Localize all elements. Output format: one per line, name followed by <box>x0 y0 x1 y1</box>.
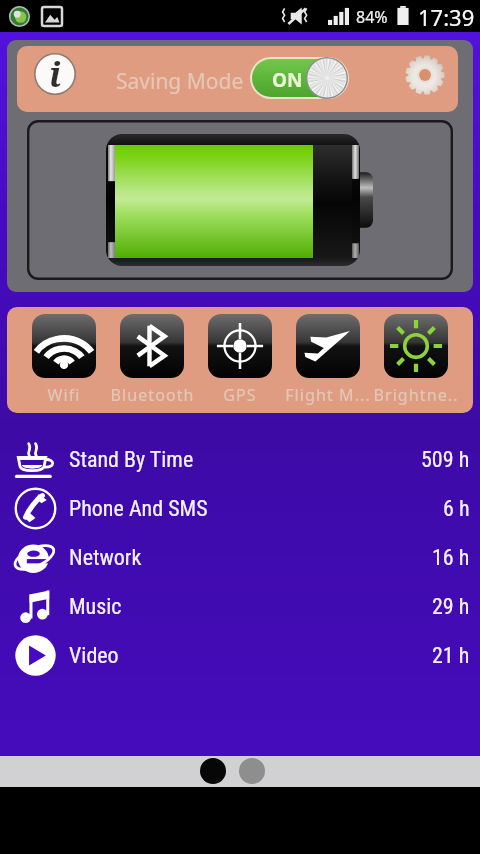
button[interactable]: Settings <box>404 54 446 96</box>
button[interactable]: Music <box>0 582 480 631</box>
button[interactable]: Flight M... <box>284 307 372 406</box>
button[interactable]: Video <box>0 631 480 680</box>
staticText: 84% <box>356 6 388 28</box>
button[interactable]: ON <box>250 57 349 99</box>
button[interactable]: Wifi <box>20 307 108 406</box>
staticText: Video <box>69 643 119 669</box>
button[interactable]: Bluetooth <box>108 307 196 406</box>
staticText: Wifi <box>47 384 81 406</box>
button[interactable]: Brightne... <box>372 307 460 413</box>
button[interactable]: Info <box>34 53 76 95</box>
staticText: i <box>49 51 62 93</box>
button[interactable]: GPS <box>196 307 284 406</box>
button[interactable]: Phone And SMS <box>0 484 480 533</box>
staticText: Flight M... <box>285 384 371 406</box>
staticText: 16 h <box>432 545 470 571</box>
staticText: Phone And SMS <box>69 496 208 522</box>
staticText: 6 h <box>443 496 470 522</box>
staticText: Bluetooth <box>110 384 195 406</box>
staticText: 17:39 <box>418 2 475 32</box>
staticText: Saving Mode <box>116 67 244 96</box>
staticText: 29 h <box>432 594 470 620</box>
button[interactable]: Page 2 <box>239 758 265 784</box>
staticText: 21 h <box>432 643 470 669</box>
staticText: Network <box>69 545 142 571</box>
staticText: Music <box>69 594 122 620</box>
button[interactable]: Stand By Time <box>0 435 480 484</box>
staticText: GPS <box>223 384 257 406</box>
staticText: 509 h <box>421 447 470 473</box>
staticText: Stand By Time <box>69 447 194 473</box>
staticText: Brightne... <box>372 384 460 413</box>
staticText: ON <box>272 67 303 93</box>
button[interactable]: Page 1 <box>200 758 226 784</box>
button[interactable]: Network <box>0 533 480 582</box>
